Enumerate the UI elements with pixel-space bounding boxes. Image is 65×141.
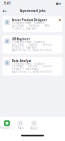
staticText: iOS Engineer [12,37,30,41]
button[interactable]: Phone Me [0,120,14,130]
staticText: Senior Product Designer [12,18,47,22]
staticText: ← [2,8,6,14]
staticText: Apps [30,126,37,130]
staticText: 9:41 [4,2,11,5]
button[interactable]: Trails [14,120,27,130]
staticText: ▮▮ ▰ [56,2,61,5]
button[interactable]: Data Analyst [2,57,62,75]
staticText: Experience 3+ years needed [12,48,52,52]
staticText: Experience 1+ years needed [12,70,52,73]
staticText: Experienced jobs [20,9,45,13]
staticText: Posted 5 days ago [12,46,37,49]
staticText: Data Analyst [12,59,31,63]
button[interactable]: Back [1,8,7,14]
button[interactable]: Senior Product Designer [2,16,62,32]
button[interactable]: Apps [27,120,41,130]
staticText: Posted 1 week ago [12,67,39,71]
staticText: Company name, location [12,40,45,44]
staticText: Full-time · Remote · Mid [12,24,50,27]
staticText: Posted 2 days ago [12,27,37,30]
staticText: Phone Me [0,126,14,130]
staticText: Company name, location [12,21,45,25]
button[interactable]: iOS Engineer [2,35,62,54]
staticText: Contract · On-site · Junior [12,65,52,68]
staticText: Trails [17,126,23,130]
staticText: Full-time · Hybrid · Senior [12,43,52,46]
staticText: Company name, location [12,62,45,65]
